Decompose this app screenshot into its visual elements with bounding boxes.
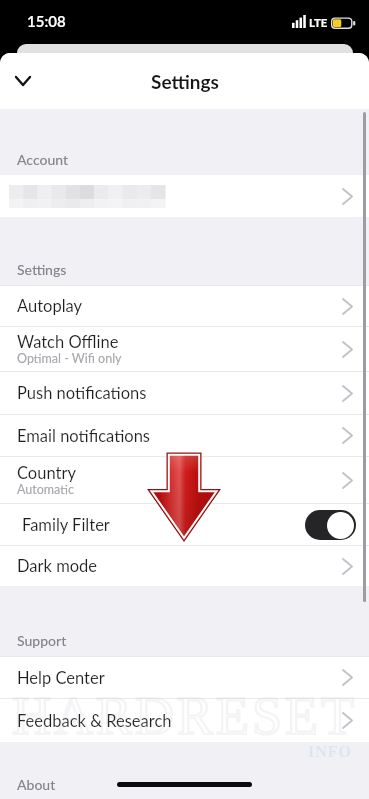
button[interactable]: Watch Offline <box>0 326 369 371</box>
staticText: Family Filter <box>22 515 305 535</box>
button[interactable]: Collapse <box>7 65 39 97</box>
button[interactable]: Autoplay <box>0 285 369 326</box>
button[interactable] <box>0 175 369 217</box>
staticText: Autoplay <box>17 296 83 316</box>
button[interactable]: Feedback & Research <box>0 698 369 742</box>
staticText: HARDRESET <box>12 686 369 746</box>
staticText: Automatic <box>17 482 74 497</box>
staticText: Settings <box>17 261 67 278</box>
button[interactable]: Email notifications <box>0 414 369 456</box>
button[interactable]: Push notifications <box>0 371 369 414</box>
button[interactable]: Family Filter <box>0 503 369 545</box>
staticText: LTE <box>309 16 328 30</box>
staticText: Help Center <box>17 668 105 688</box>
staticText: Push notifications <box>17 383 147 403</box>
staticText: Settings <box>151 70 219 93</box>
staticText: Country <box>17 463 76 483</box>
staticText: Optimal - Wifi only <box>17 351 122 366</box>
button[interactable]: Help Center <box>0 656 369 698</box>
staticText: About <box>17 776 56 793</box>
staticText: 15:08 <box>27 12 66 30</box>
button[interactable]: Country <box>0 456 369 503</box>
staticText: Support <box>17 632 67 649</box>
staticText: Dark mode <box>17 556 98 576</box>
button[interactable]: Dark mode <box>0 545 369 586</box>
staticText: Watch Offline <box>17 332 119 352</box>
staticText: Email notifications <box>17 426 151 446</box>
staticText: Account <box>17 151 69 168</box>
staticText: Feedback & Research <box>17 711 172 731</box>
